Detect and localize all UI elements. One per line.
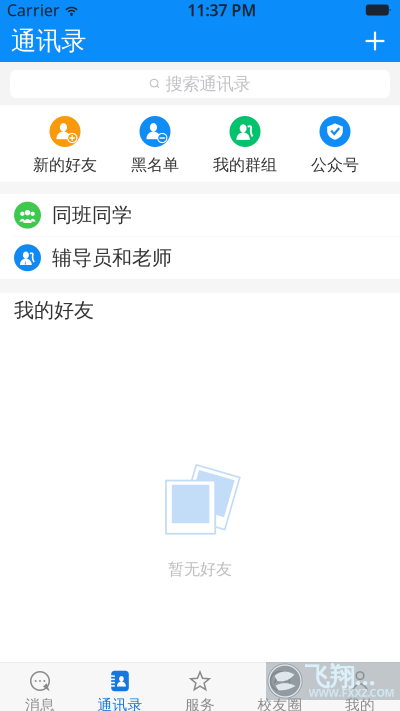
staticText: 搜索通讯录 (165, 73, 250, 95)
staticText: 通讯录 (97, 696, 142, 711)
button[interactable]: 服务 (160, 663, 240, 711)
button[interactable]: 校友圈 (240, 663, 320, 711)
staticText: 飞翔下载 (304, 659, 398, 692)
button[interactable]: 公众号 (290, 116, 380, 175)
staticText: 暂无好友 (168, 559, 232, 579)
button[interactable]: 辅导员和老师 (0, 237, 400, 279)
staticText: 公众号 (311, 155, 359, 175)
staticText: WWW.FXXZ.COM (308, 685, 394, 700)
staticText: 同班同学 (52, 203, 132, 227)
button[interactable]: Add contact (353, 20, 397, 62)
button[interactable]: 同班同学 (0, 194, 400, 236)
staticText: 11:37 PM (187, 0, 256, 21)
staticText: 我的 (345, 696, 375, 711)
staticText: 黑名单 (131, 155, 179, 175)
button[interactable]: 消息 (0, 663, 80, 711)
staticText: 我的群组 (213, 155, 277, 175)
button[interactable]: 通讯录 (80, 663, 160, 711)
staticText: 辅导员和老师 (52, 245, 172, 270)
staticText: 校友圈 (257, 696, 302, 711)
button[interactable]: 我的群组 (200, 116, 290, 175)
staticText: 消息 (25, 696, 55, 711)
staticText: Carrier (7, 0, 60, 21)
button[interactable]: 黑名单 (110, 116, 200, 175)
button[interactable]: 我的 (320, 663, 400, 711)
staticText: 通讯录 (11, 25, 86, 56)
staticText: 服务 (185, 696, 215, 711)
button[interactable]: 新的好友 (20, 116, 110, 175)
staticText: 我的好友 (14, 298, 94, 323)
staticText: 新的好友 (33, 155, 97, 175)
